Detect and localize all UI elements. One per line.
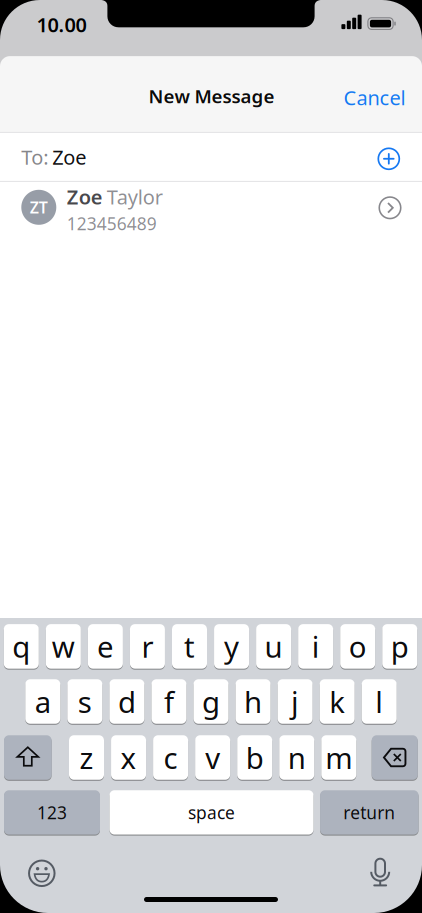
button[interactable]: Cancel (344, 84, 406, 111)
staticText: u (265, 627, 283, 666)
staticText: y (224, 627, 239, 666)
button[interactable]: t (172, 623, 207, 670)
staticText: Taylor (107, 183, 163, 210)
button[interactable]: b (237, 734, 272, 781)
staticText: 123456489 (67, 212, 157, 235)
staticText: x (121, 738, 137, 777)
staticText: f (164, 682, 174, 721)
staticText: b (246, 738, 264, 777)
staticText: v (205, 738, 220, 777)
button[interactable]: q (4, 623, 39, 670)
button[interactable]: z (69, 734, 104, 781)
button[interactable]: Contact Details (379, 197, 401, 219)
button[interactable]: r (130, 623, 165, 670)
staticText: New Message (148, 84, 274, 108)
staticText: d (118, 682, 136, 721)
button[interactable]: s (67, 678, 102, 725)
staticText: m (325, 738, 352, 777)
button[interactable]: o (340, 623, 375, 670)
button[interactable]: space (109, 789, 313, 835)
button[interactable]: m (321, 734, 356, 781)
button[interactable]: l (362, 678, 397, 725)
button[interactable]: Add Contact (378, 148, 399, 169)
button[interactable]: d (109, 678, 144, 725)
button[interactable]: Emoji (27, 858, 57, 888)
staticText: j (291, 682, 299, 721)
staticText: q (12, 627, 30, 666)
staticText: z (79, 738, 93, 777)
button[interactable]: e (88, 623, 123, 670)
button[interactable]: k (320, 678, 355, 725)
button[interactable]: w (46, 623, 81, 670)
button[interactable]: c (153, 734, 188, 781)
button[interactable]: return (320, 789, 419, 835)
staticText: 123 (37, 801, 67, 824)
button[interactable]: To: (0, 133, 422, 181)
button[interactable]: g (193, 678, 228, 725)
button[interactable]: Shift (4, 734, 52, 781)
staticText: r (141, 627, 153, 666)
button[interactable]: ZT (0, 182, 422, 233)
staticText: 10.00 (37, 11, 87, 38)
staticText: s (78, 682, 92, 721)
staticText: i (312, 627, 320, 666)
staticText: return (343, 801, 395, 824)
staticText: e (97, 627, 114, 666)
staticText: To: (21, 144, 48, 170)
staticText: o (349, 627, 367, 666)
button[interactable]: a (25, 678, 60, 725)
button[interactable]: i (298, 623, 333, 670)
staticText: l (375, 682, 383, 721)
staticText: k (329, 682, 345, 721)
button[interactable]: 123 (4, 789, 100, 835)
staticText: p (391, 627, 409, 666)
button[interactable]: p (382, 623, 417, 670)
staticText: c (164, 738, 178, 777)
staticText: w (52, 627, 75, 666)
staticText: h (244, 682, 262, 721)
staticText: a (35, 682, 51, 721)
button[interactable]: j (278, 678, 313, 725)
button[interactable]: Dictation (368, 857, 392, 887)
button[interactable]: f (151, 678, 186, 725)
staticText: g (202, 682, 220, 721)
staticText: Zoe (67, 183, 103, 210)
button[interactable]: u (256, 623, 291, 670)
staticText: t (184, 627, 195, 666)
staticText: ZT (30, 197, 48, 218)
button[interactable]: x (111, 734, 146, 781)
button[interactable]: Delete (372, 734, 418, 781)
staticText: space (188, 801, 235, 824)
button[interactable]: n (279, 734, 314, 781)
staticText: Cancel (344, 84, 406, 111)
button[interactable]: v (195, 734, 230, 781)
button[interactable]: y (214, 623, 249, 670)
staticText: n (288, 738, 306, 777)
button[interactable]: h (236, 678, 271, 725)
staticText: Zoe (52, 144, 86, 170)
